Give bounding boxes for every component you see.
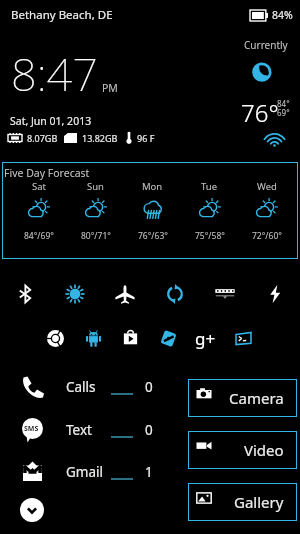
staticText: Bethany Beach, DE [11,7,113,23]
staticText: Tue [201,180,218,193]
button[interactable]: SMS [0,416,165,444]
button[interactable]: Calls [0,373,165,401]
button[interactable]: Airplane mode [100,278,150,310]
staticText: 8:47 [11,43,98,104]
staticText: Sat [32,180,46,193]
staticText: Currently [244,38,288,52]
staticText: 84% [272,8,293,22]
staticText: 1 [145,463,153,481]
button[interactable]: Android [79,324,107,352]
staticText: 96 F [137,132,155,144]
staticText: Five Day Forecast [4,166,90,180]
button[interactable]: Chrome [41,324,69,352]
staticText: 84°/69° [24,230,54,242]
button[interactable]: Google Plus [191,324,219,352]
staticText: SMS [24,424,39,434]
button[interactable]: Video [188,431,297,469]
button[interactable]: Flash [250,278,300,310]
button[interactable]: Photos [154,324,182,352]
staticText: 75°/58° [195,230,225,242]
button[interactable]: Gmail [0,458,165,486]
button[interactable]: Terminal [229,324,257,352]
button[interactable]: Play Store [116,324,144,352]
staticText: Sun [87,180,104,193]
staticText: Gmail [66,463,103,481]
button[interactable]: Bluetooth [0,278,50,310]
staticText: Calls [66,378,96,396]
staticText: 69° [277,107,290,118]
staticText: Sat, Jun 01, 2013 [10,114,92,128]
staticText: Camera [229,388,284,408]
staticText: 76°/63° [138,230,168,242]
staticText: Wed [257,180,277,193]
staticText: 84° [277,98,290,109]
staticText: 80°/71° [81,230,111,242]
staticText: 0 [145,421,153,439]
staticText: Gallery [234,492,284,512]
button[interactable]: Keyboard [200,278,250,310]
staticText: 8.07GB [27,132,58,144]
staticText: Mon [142,180,163,193]
staticText: g+ [195,327,216,350]
button[interactable]: Brightness [50,278,100,310]
button[interactable]: Camera [188,379,297,417]
staticText: 72°/60° [252,230,282,242]
button[interactable]: Sync [150,278,200,310]
staticText: Text [66,421,92,439]
staticText: 76° [241,96,279,129]
button[interactable]: Expand [20,498,44,522]
staticText: PM [102,81,118,95]
staticText: 13.82GB [82,132,118,144]
button[interactable]: Gallery [188,483,297,521]
staticText: 0 [145,378,153,396]
staticText: Video [244,440,284,460]
